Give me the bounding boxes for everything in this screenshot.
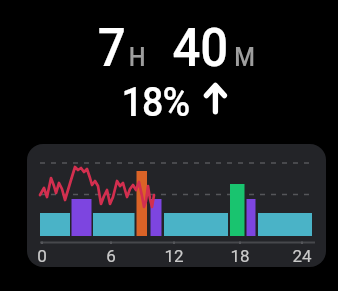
staticText: H bbox=[129, 42, 146, 72]
staticText: 18% bbox=[122, 78, 190, 126]
staticText: M bbox=[234, 42, 255, 72]
staticText: 24 bbox=[292, 246, 312, 266]
staticText: 40 bbox=[172, 16, 229, 79]
button[interactable]: 0 bbox=[27, 144, 326, 267]
staticText: 7 bbox=[98, 16, 126, 79]
staticText: 0 bbox=[37, 246, 47, 266]
staticText: 18 bbox=[230, 246, 250, 266]
staticText: 6 bbox=[106, 246, 116, 266]
staticText: 12 bbox=[164, 246, 184, 266]
